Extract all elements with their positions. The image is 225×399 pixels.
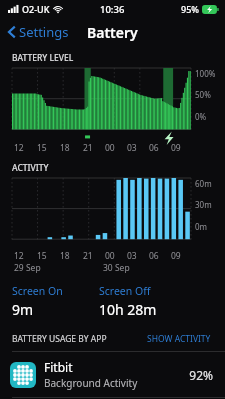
staticText: 60m <box>195 178 212 189</box>
staticText: 50% <box>195 89 211 100</box>
button[interactable]: Settings <box>6 20 71 44</box>
button[interactable]: SHOW ACTIVITY <box>145 331 213 347</box>
button[interactable]: Fitbit <box>0 352 225 397</box>
staticText: 18 <box>60 142 70 154</box>
staticText: 0m <box>195 221 208 232</box>
staticText: BATTERY USAGE BY APP <box>12 333 107 345</box>
staticText: Screen Off <box>99 284 151 298</box>
staticText: SHOW ACTIVITY <box>147 333 211 345</box>
staticText: 00 <box>105 142 115 154</box>
staticText: Screen On <box>12 284 63 298</box>
staticText: 06 <box>149 142 159 154</box>
staticText: 95% <box>181 3 199 15</box>
staticText: BATTERY LEVEL <box>12 52 74 64</box>
staticText: 10h 28m <box>99 300 157 319</box>
staticText: 92% <box>189 367 213 383</box>
staticText: Fitbit <box>44 359 73 375</box>
staticText: 12 <box>14 142 24 154</box>
staticText: 09 <box>171 142 181 154</box>
staticText: 09 <box>171 250 181 262</box>
staticText: 21 <box>83 142 93 154</box>
staticText: 100% <box>195 68 216 79</box>
staticText: O2-UK <box>22 3 50 15</box>
staticText: Settings <box>19 23 69 41</box>
staticText: 18 <box>60 250 70 262</box>
staticText: 0% <box>195 111 207 122</box>
staticText: 30m <box>195 199 212 210</box>
staticText: 03 <box>127 142 137 154</box>
staticText: 15 <box>37 250 47 262</box>
staticText: 15 <box>37 142 47 154</box>
staticText: 00 <box>105 250 115 262</box>
staticText: 10:36 <box>100 3 125 16</box>
staticText: 30 Sep <box>103 262 130 274</box>
staticText: 21 <box>83 250 93 262</box>
staticText: 03 <box>127 250 137 262</box>
staticText: Battery <box>87 23 138 42</box>
staticText: 06 <box>149 250 159 262</box>
staticText: 29 Sep <box>14 262 41 274</box>
staticText: Background Activity <box>44 376 138 390</box>
staticText: ACTIVITY <box>12 162 49 174</box>
staticText: 9m <box>12 300 34 319</box>
staticText: 12 <box>14 250 24 262</box>
